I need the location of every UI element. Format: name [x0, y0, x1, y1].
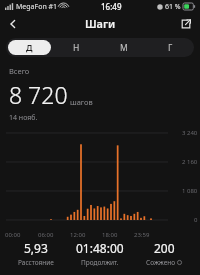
staticText: Шаги: [85, 16, 116, 31]
staticText: 5,93: [24, 240, 48, 256]
staticText: 14 нояб.: [9, 113, 38, 123]
staticText: MegaFon #1: [16, 2, 58, 12]
staticText: 00:00: [5, 231, 38, 239]
button[interactable]: 01:48:00: [68, 240, 132, 267]
staticText: 1 080: [182, 187, 198, 195]
staticText: 3 240: [182, 129, 198, 137]
staticText: шагов: [70, 97, 93, 107]
staticText: 06:00: [38, 231, 70, 239]
button[interactable]: Н: [55, 40, 98, 55]
staticText: 2 160: [182, 158, 198, 166]
staticText: Расстояние: [18, 258, 54, 267]
staticText: Г: [168, 42, 173, 54]
staticText: 12:00: [70, 231, 102, 239]
staticText: Д: [26, 42, 33, 54]
staticText: Продолжит.: [81, 258, 119, 267]
staticText: Сожжено: [146, 258, 176, 267]
staticText: 200: [154, 240, 175, 256]
staticText: 0: [194, 216, 198, 224]
button[interactable]: М: [102, 40, 145, 55]
button[interactable]: 200: [132, 240, 196, 267]
button[interactable]: Share: [176, 14, 196, 34]
button[interactable]: Г: [149, 40, 192, 55]
staticText: 16:49: [101, 1, 122, 12]
staticText: 18:00: [102, 231, 134, 239]
button[interactable]: Д: [8, 40, 51, 55]
staticText: 61 %: [165, 2, 181, 12]
staticText: М: [120, 42, 128, 54]
button[interactable]: 5,93: [4, 240, 68, 267]
staticText: Н: [73, 42, 80, 54]
staticText: 23:59: [134, 231, 166, 239]
staticText: 01:48:00: [76, 240, 124, 256]
staticText: Всего: [9, 66, 30, 76]
staticText: 8 720: [9, 79, 68, 110]
button[interactable]: Back: [3, 14, 23, 34]
